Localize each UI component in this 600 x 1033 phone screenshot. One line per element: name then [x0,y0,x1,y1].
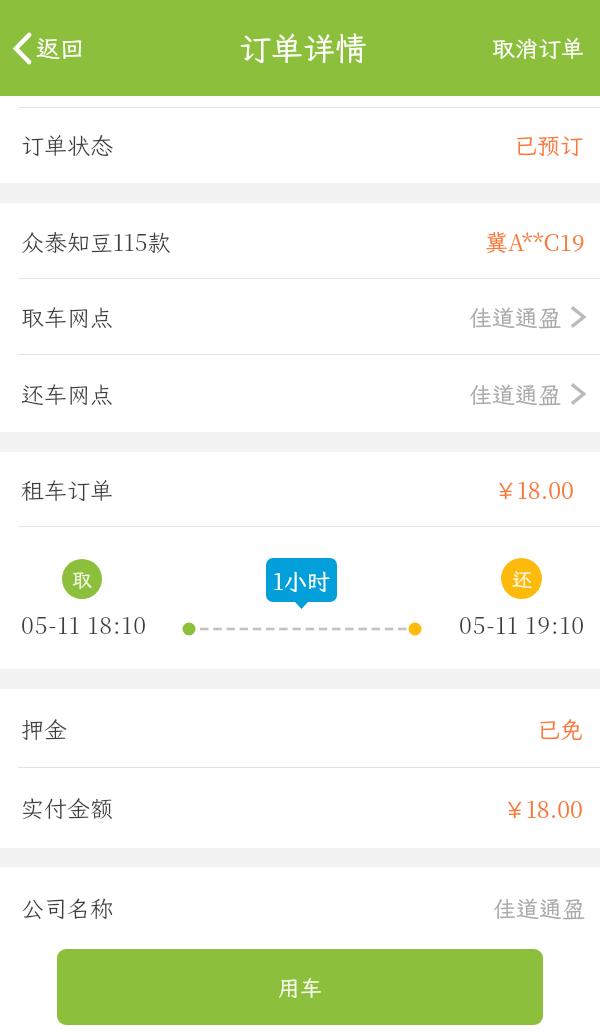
staticText: 返回 [36,32,84,64]
button[interactable]: 公司名称 [0,867,600,949]
button[interactable]: 租车订单 [0,452,600,527]
staticText: 公司名称 [21,893,113,923]
staticText: ￥18.00 [494,473,574,506]
staticText: 已预订 [514,130,583,160]
button[interactable]: 押金 [0,689,600,768]
staticText: 1小时 [273,564,330,597]
staticText: 05-11 18:10 [21,608,147,641]
staticText: ￥18.00 [503,792,583,825]
staticText: 已免 [537,714,583,744]
staticText: 用车 [278,973,323,1002]
other: Back [13,33,31,64]
button[interactable]: 订单状态 [0,107,600,183]
staticText: 取消订单 [492,33,584,63]
staticText: 还 [512,566,532,592]
staticText: 佳道通盈 [469,379,561,409]
staticText: 佳道通盈 [469,302,561,332]
staticText: 冀A**C19 [485,225,585,258]
staticText: 取车网点 [21,302,113,332]
button[interactable]: 取车网点 [0,279,600,355]
staticText: 订单状态 [21,130,113,160]
staticText: 佳道通盈 [493,893,585,923]
button[interactable]: Back [0,22,98,74]
button[interactable]: 还车网点 [0,355,600,432]
staticText: 实付金额 [21,793,113,823]
button[interactable]: 众泰知豆115款 [0,203,600,279]
staticText: 还车网点 [21,379,113,409]
staticText: 租车订单 [21,475,113,505]
staticText: 押金 [21,714,67,744]
staticText: 众泰知豆115款 [21,225,171,258]
button[interactable]: 实付金额 [0,768,600,848]
staticText: 05-11 19:10 [459,608,585,641]
button[interactable]: 取消订单 [476,21,600,75]
staticText: 订单详情 [239,27,368,69]
button[interactable]: 用车 [57,949,543,1025]
staticText: 取 [72,566,92,592]
